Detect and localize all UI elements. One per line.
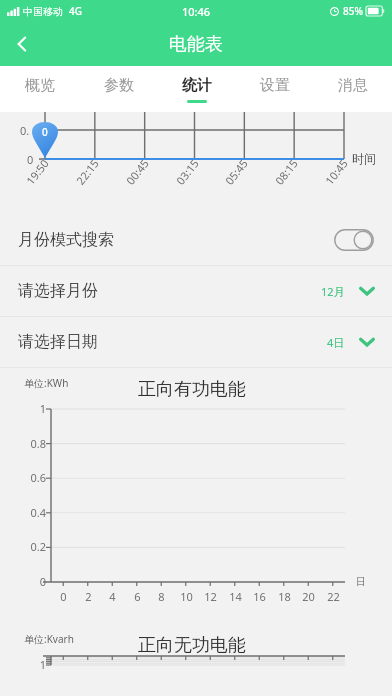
staticText: 0.6 bbox=[30, 470, 46, 485]
staticText: 4日 bbox=[327, 335, 345, 350]
staticText: 4G bbox=[69, 4, 82, 18]
staticText: 03:15 bbox=[173, 155, 202, 188]
other: Expand 请选择日期 bbox=[356, 331, 378, 353]
staticText: 正向无功电能 bbox=[138, 634, 246, 657]
staticText: 请选择日期 bbox=[18, 332, 98, 352]
staticText: 消息 bbox=[338, 76, 368, 95]
staticText: 中国移动 bbox=[23, 5, 63, 18]
button[interactable]: 参数 bbox=[79, 66, 158, 112]
staticText: 概览 bbox=[25, 76, 55, 95]
staticText: 12 bbox=[204, 589, 217, 604]
staticText: 22 bbox=[327, 589, 340, 604]
staticText: 单位:KWh bbox=[24, 376, 69, 390]
staticText: 0 bbox=[39, 574, 46, 589]
other: Expand 请选择月份 bbox=[356, 280, 378, 302]
staticText: 0.4 bbox=[30, 505, 46, 520]
staticText: 时间 bbox=[352, 151, 376, 166]
button[interactable]: 概览 bbox=[0, 66, 79, 112]
staticText: 0.2 bbox=[30, 539, 46, 554]
staticText: 10:46 bbox=[182, 4, 211, 19]
staticText: 85% bbox=[343, 4, 363, 18]
staticText: 20 bbox=[302, 589, 315, 604]
staticText: 日 bbox=[356, 575, 366, 588]
staticText: 0 bbox=[60, 589, 67, 604]
staticText: 18 bbox=[278, 589, 291, 604]
staticText: 10 bbox=[180, 589, 193, 604]
button[interactable]: Back bbox=[0, 22, 44, 66]
staticText: 参数 bbox=[104, 76, 134, 95]
staticText: 12月 bbox=[321, 284, 345, 299]
staticText: 4 bbox=[109, 589, 116, 604]
button[interactable]: 请选择月份 bbox=[0, 266, 392, 316]
button[interactable]: 统计 bbox=[158, 66, 236, 112]
staticText: 单位:Kvarh bbox=[24, 632, 74, 646]
staticText: 0.8 bbox=[30, 436, 46, 451]
staticText: 16 bbox=[253, 589, 266, 604]
staticText: 14 bbox=[229, 589, 242, 604]
button[interactable]: 消息 bbox=[314, 66, 392, 112]
staticText: 0 bbox=[27, 152, 34, 167]
staticText: 19:50 bbox=[23, 155, 52, 188]
button[interactable]: 设置 bbox=[236, 66, 314, 112]
staticText: 10:45 bbox=[322, 155, 351, 188]
staticText: 设置 bbox=[260, 76, 290, 95]
staticText: 1 bbox=[39, 657, 46, 672]
staticText: 1 bbox=[39, 401, 46, 416]
button[interactable]: Toggle month mode search bbox=[334, 229, 374, 251]
staticText: 22:15 bbox=[73, 155, 102, 188]
staticText: 6 bbox=[134, 589, 141, 604]
button[interactable]: 月份模式搜索 bbox=[0, 215, 392, 265]
staticText: 05:45 bbox=[222, 155, 251, 188]
staticText: 统计 bbox=[182, 76, 212, 95]
staticText: 08:15 bbox=[272, 155, 301, 188]
staticText: 电能表 bbox=[169, 33, 223, 56]
staticText: 正向有功电能 bbox=[138, 378, 246, 401]
staticText: 0 bbox=[42, 125, 48, 139]
staticText: 2 bbox=[85, 589, 92, 604]
staticText: 8 bbox=[158, 589, 165, 604]
staticText: 请选择月份 bbox=[18, 281, 98, 301]
staticText: 0. bbox=[20, 123, 30, 138]
staticText: 月份模式搜索 bbox=[18, 230, 114, 250]
button[interactable]: 请选择日期 bbox=[0, 317, 392, 367]
staticText: 00:45 bbox=[123, 155, 152, 188]
